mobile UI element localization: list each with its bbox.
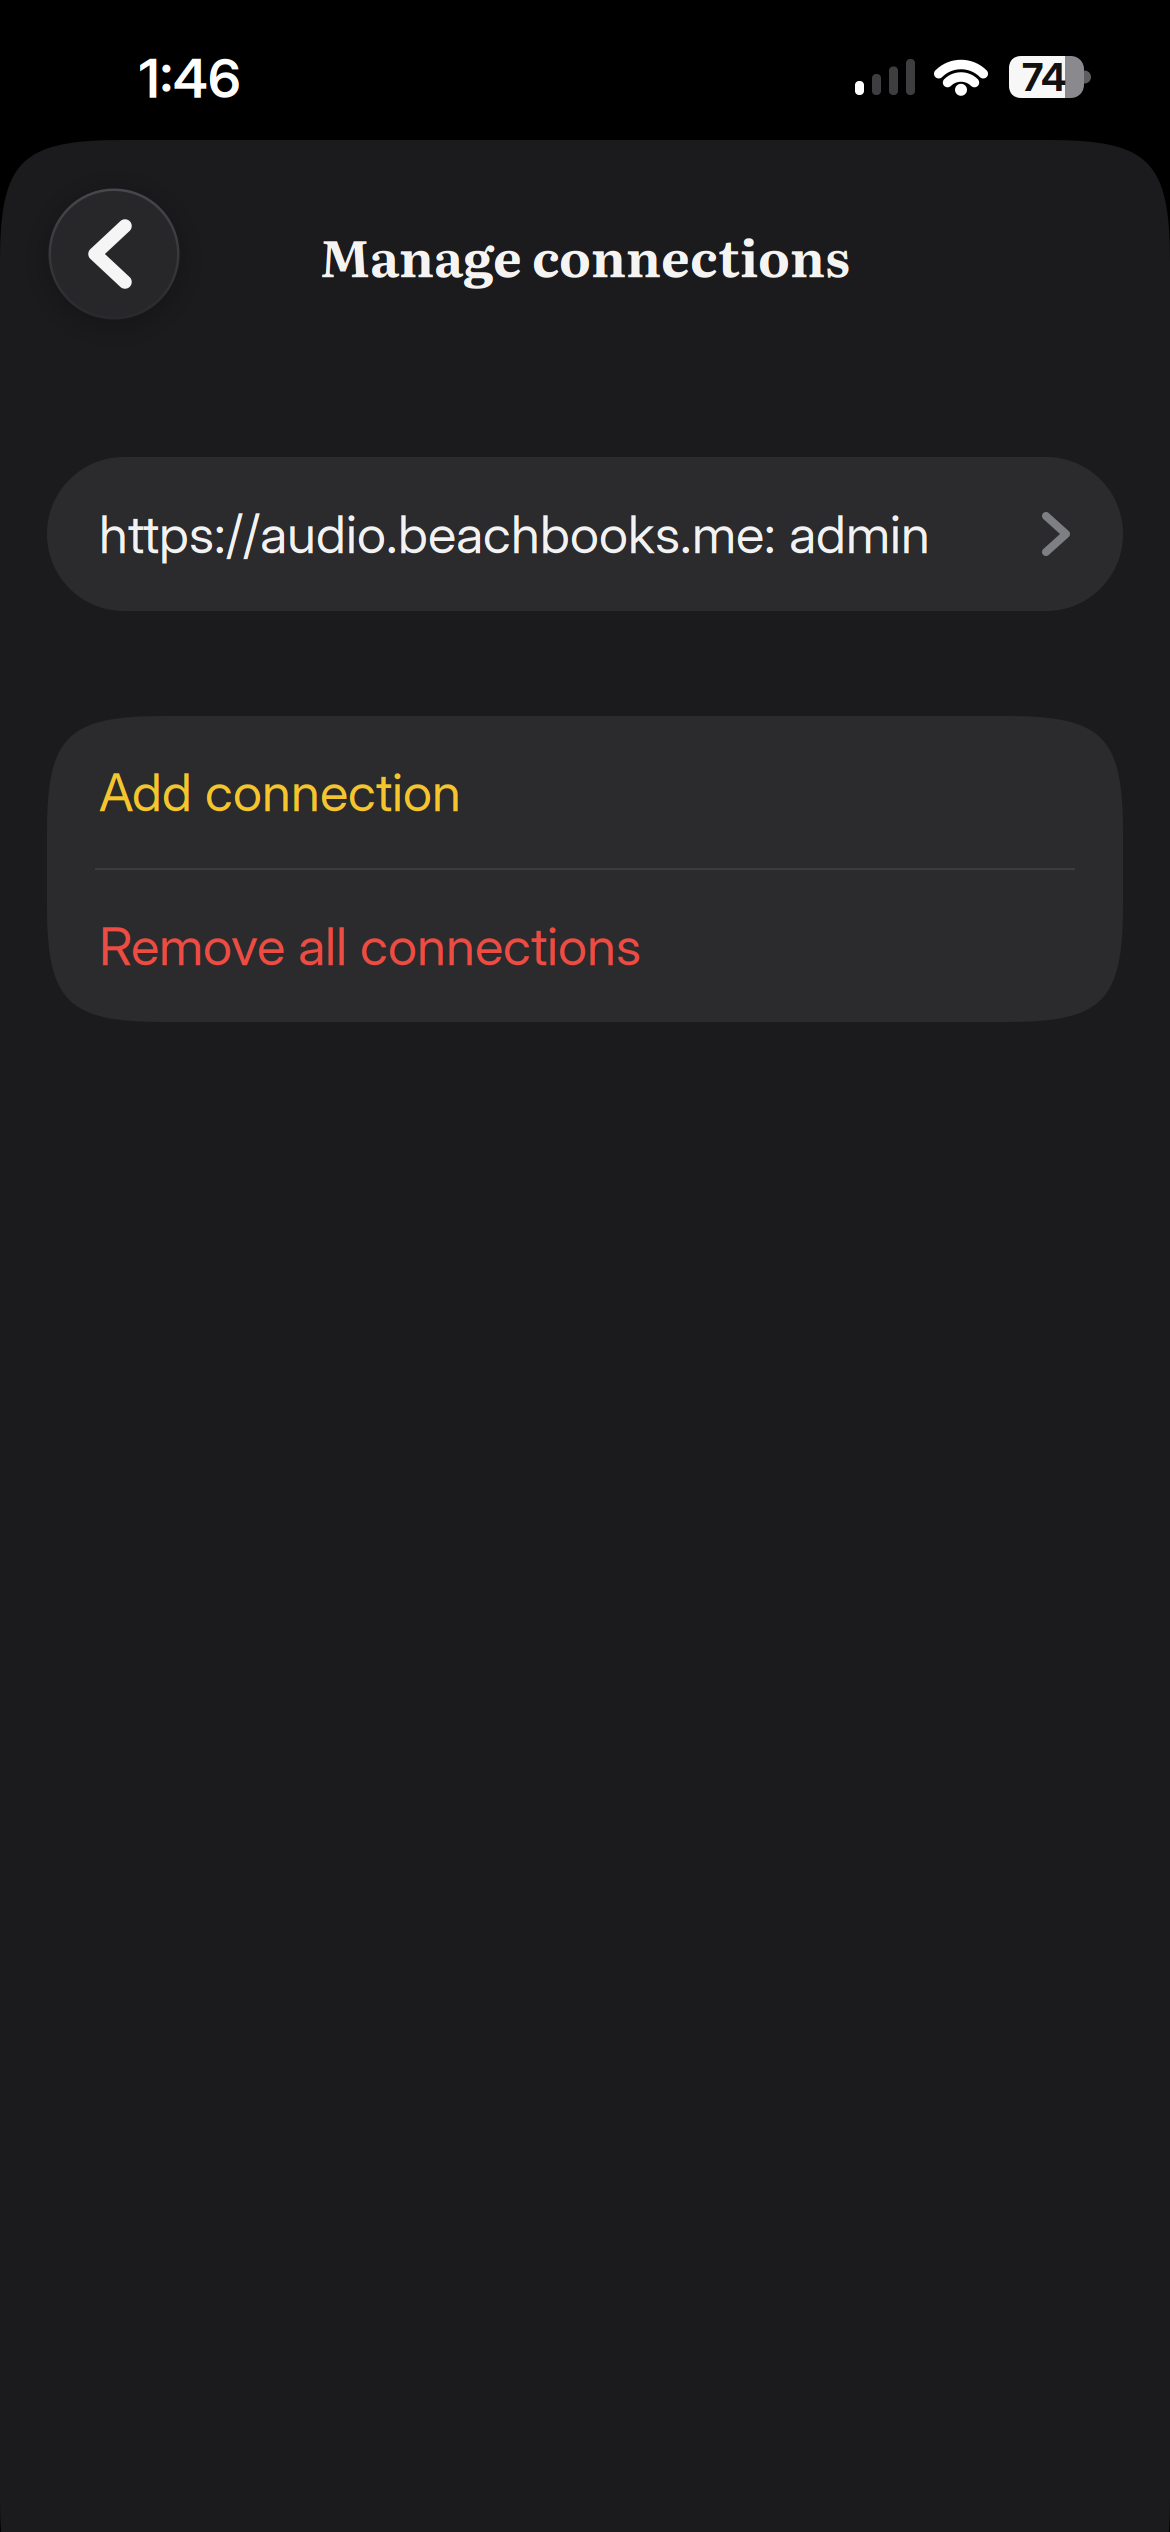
button[interactable]: https://audio.beachbooks.me: admin: [47, 457, 1123, 611]
button[interactable]: Back: [48, 188, 179, 319]
staticText: https://audio.beachbooks.me: admin: [99, 502, 930, 566]
staticText: Add connection: [99, 760, 461, 824]
button[interactable]: Add connection: [47, 716, 1123, 868]
staticText: Manage connections: [320, 217, 850, 293]
staticText: 1:46: [139, 45, 241, 111]
staticText: 74: [1022, 54, 1066, 100]
button[interactable]: Remove all connections: [47, 870, 1123, 1022]
staticText: Remove all connections: [99, 914, 641, 978]
